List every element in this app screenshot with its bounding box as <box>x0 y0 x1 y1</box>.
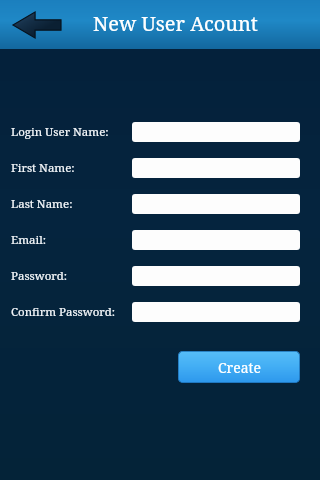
button[interactable] <box>132 158 300 178</box>
staticText: Create <box>218 358 261 377</box>
staticText: First Name: <box>11 160 75 176</box>
staticText: Password: <box>11 268 68 284</box>
button[interactable] <box>132 230 300 250</box>
button[interactable] <box>132 302 300 322</box>
staticText: New User Acount <box>93 10 258 37</box>
staticText: Login User Name: <box>11 124 109 140</box>
button[interactable] <box>132 266 300 286</box>
button[interactable]: Create <box>178 351 300 383</box>
button[interactable] <box>132 122 300 142</box>
button[interactable] <box>132 194 300 214</box>
staticText: Last Name: <box>11 196 73 212</box>
staticText: Confirm Password: <box>11 304 116 320</box>
button[interactable]: Back <box>11 8 63 42</box>
staticText: Email: <box>11 232 47 248</box>
